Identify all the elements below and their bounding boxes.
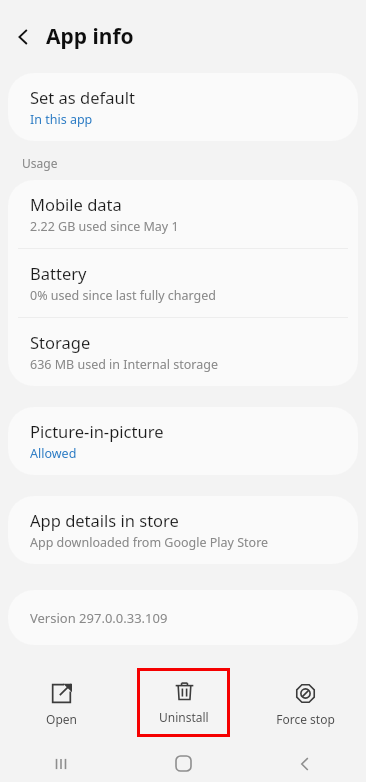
staticText: Storage xyxy=(30,331,91,353)
staticText: App info xyxy=(46,22,134,51)
staticText: App downloaded from Google Play Store xyxy=(30,534,269,551)
staticText: Open xyxy=(46,711,77,727)
staticText: Version 297.0.0.33.109 xyxy=(30,609,168,627)
button[interactable]: Home xyxy=(122,745,244,782)
staticText: Picture-in-picture xyxy=(30,420,164,442)
staticText: In this app xyxy=(30,111,93,128)
staticText: Usage xyxy=(22,155,58,171)
button[interactable]: Battery xyxy=(8,249,358,317)
button[interactable]: Storage xyxy=(8,318,358,386)
staticText: 0% used since last fully charged xyxy=(30,287,217,304)
button[interactable]: Uninstall xyxy=(140,671,227,734)
button[interactable]: Back xyxy=(0,14,46,60)
button[interactable]: Recents xyxy=(0,745,122,782)
staticText: 2.22 GB used since May 1 xyxy=(30,218,179,235)
staticText: Mobile data xyxy=(30,193,122,215)
button[interactable]: Picture-in-picture xyxy=(8,407,358,475)
staticText: Force stop xyxy=(276,711,335,727)
staticText: Battery xyxy=(30,262,87,284)
staticText: Allowed xyxy=(30,445,77,462)
staticText: Set as default xyxy=(30,86,135,108)
button[interactable]: App details in store xyxy=(8,496,358,564)
button[interactable]: Back xyxy=(244,745,366,782)
button[interactable]: Mobile data xyxy=(8,180,358,248)
button[interactable]: Open xyxy=(0,668,122,745)
button[interactable]: Set as default xyxy=(8,73,358,141)
staticText: 636 MB used in Internal storage xyxy=(30,356,218,373)
button[interactable]: Force stop xyxy=(244,668,366,745)
staticText: Uninstall xyxy=(159,709,209,725)
staticText: App details in store xyxy=(30,509,179,531)
